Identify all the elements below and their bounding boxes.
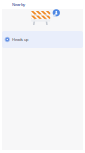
staticText: Nearby bbox=[12, 2, 25, 7]
staticText: Heads up bbox=[12, 37, 28, 42]
